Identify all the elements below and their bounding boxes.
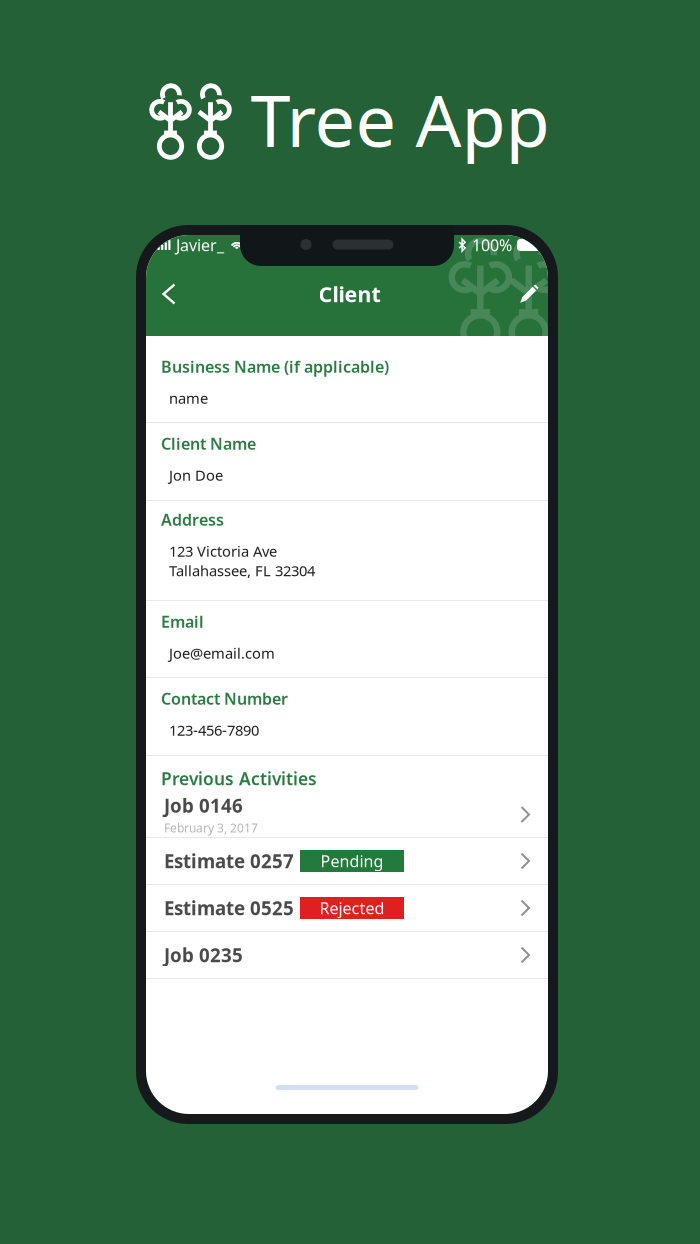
staticText: Address: [161, 509, 224, 530]
staticText: 123-456-7890: [169, 720, 259, 740]
staticText: Contact Number: [161, 688, 288, 709]
staticText: Previous Activities: [161, 767, 317, 790]
staticText: Email: [161, 611, 204, 632]
staticText: Tallahassee, FL 32304: [169, 561, 315, 580]
staticText: February 3, 2017: [164, 820, 258, 836]
staticText: Client: [318, 280, 380, 308]
staticText: Business Name (if applicable): [161, 356, 389, 377]
staticText: Javier_: [176, 234, 224, 256]
button[interactable]: Job 0146: [146, 790, 548, 839]
staticText: Pending: [320, 850, 383, 872]
button[interactable]: Estimate 0525: [146, 885, 548, 931]
staticText: Estimate 0525: [164, 896, 294, 920]
staticText: Client Name: [161, 433, 256, 454]
staticText: Tree App: [250, 71, 549, 167]
button[interactable]: Edit: [511, 270, 547, 318]
staticText: Job 0146: [164, 793, 243, 818]
button[interactable]: Job 0235: [146, 932, 548, 978]
staticText: 100%: [472, 234, 512, 256]
staticText: Job 0235: [164, 943, 243, 967]
staticText: name: [169, 388, 208, 408]
staticText: Rejected: [319, 897, 384, 919]
staticText: 123 Victoria Ave: [169, 541, 277, 561]
button[interactable]: Estimate 0257: [146, 838, 548, 884]
staticText: Jon Doe: [169, 465, 223, 485]
button[interactable]: Back: [150, 270, 188, 318]
staticText: Joe@email.com: [169, 643, 275, 663]
staticText: Estimate 0257: [164, 849, 294, 873]
